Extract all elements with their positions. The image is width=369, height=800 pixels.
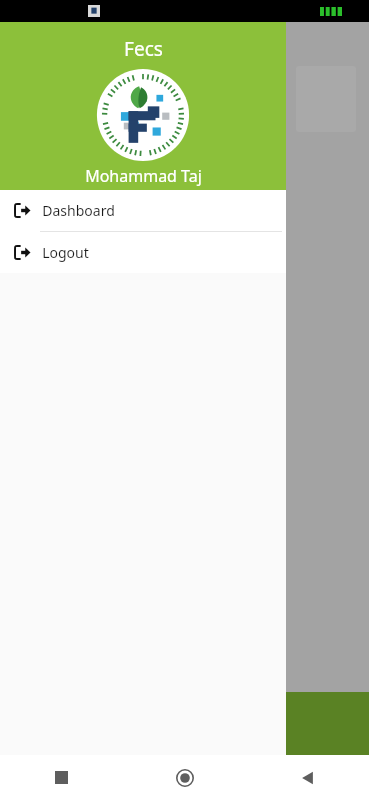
button[interactable]: Logout [0, 232, 286, 273]
button[interactable]: Recent apps [0, 755, 123, 800]
staticText: Logout [42, 243, 89, 262]
button[interactable]: Back [246, 755, 369, 800]
button[interactable]: Home [123, 755, 246, 800]
button[interactable] [284, 692, 369, 755]
staticText: Mohammad Taj [85, 165, 202, 187]
button[interactable]: Dashboard [0, 190, 286, 231]
staticText: Dashboard [42, 201, 115, 220]
staticText: Fecs [124, 36, 163, 62]
